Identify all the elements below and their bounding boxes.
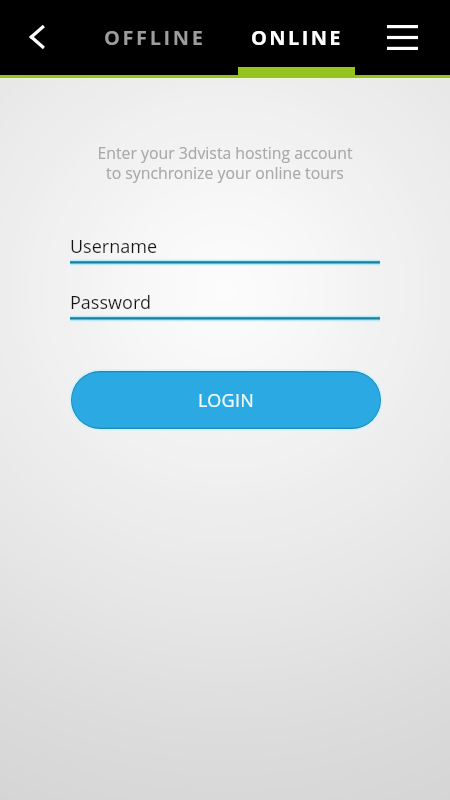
staticText: Enter your 3dvista hosting account — [0, 142, 450, 164]
staticText: LOGIN — [198, 388, 255, 413]
staticText: ONLINE — [251, 24, 343, 51]
staticText: Password — [70, 290, 151, 315]
staticText: Username — [70, 234, 158, 259]
button[interactable]: Menu — [371, 0, 434, 74]
staticText: OFFLINE — [104, 24, 206, 51]
button[interactable]: LOGIN — [68, 368, 384, 432]
staticText: to synchronize your online tours — [0, 162, 450, 184]
button[interactable]: Back — [7, 0, 67, 74]
button[interactable]: OFFLINE — [97, 0, 213, 74]
button[interactable]: ONLINE — [243, 0, 351, 74]
